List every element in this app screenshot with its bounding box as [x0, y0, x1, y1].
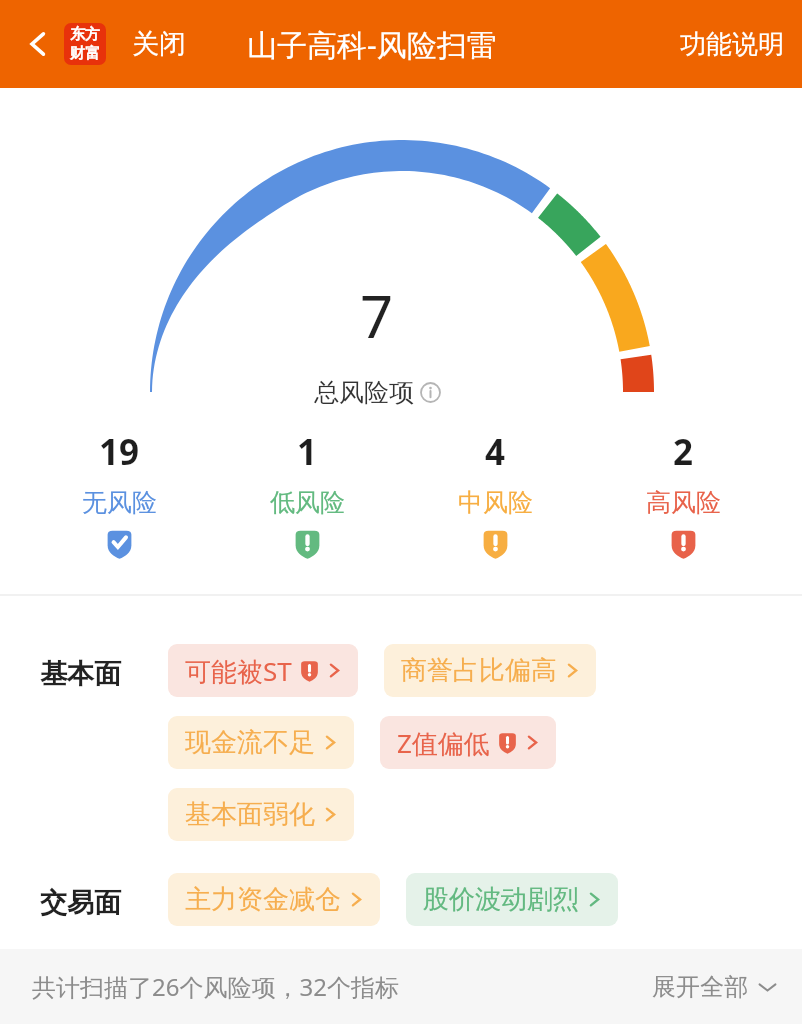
staticText: 功能说明 [680, 28, 784, 61]
staticText: 股价波动剧烈 [423, 883, 579, 916]
staticText: 可能被ST [185, 653, 292, 689]
staticText: 中风险 [458, 487, 533, 518]
staticText: 2 [673, 428, 694, 476]
staticText: 基本面弱化 [185, 798, 315, 831]
button[interactable]: 2 [608, 426, 758, 561]
button[interactable]: 展开全部 [644, 962, 786, 1012]
staticText: 低风险 [270, 487, 345, 518]
staticText: 共计扫描了26个风险项，32个指标 [32, 970, 399, 1003]
button[interactable]: Back [12, 18, 64, 70]
staticText: 4 [485, 428, 506, 476]
staticText: 东方 [70, 25, 100, 44]
staticText: 主力资金减仓 [185, 883, 341, 916]
button[interactable]: 可能被ST [168, 644, 358, 697]
button[interactable]: East Money home [64, 23, 106, 65]
button[interactable]: 4 [420, 426, 570, 561]
button[interactable]: 商誉占比偏高 [384, 644, 596, 697]
button[interactable]: 基本面弱化 [168, 788, 354, 841]
button[interactable]: Info about total risks [420, 382, 441, 403]
staticText: 高风险 [646, 487, 721, 518]
button[interactable]: 关闭 [122, 17, 196, 71]
button[interactable]: 功能说明 [672, 18, 792, 71]
staticText: 交易面 [40, 886, 121, 920]
staticText: 财富 [70, 44, 100, 63]
staticText: 总风险项 [314, 377, 414, 408]
button[interactable]: 股价波动剧烈 [406, 873, 618, 926]
staticText: Z值偏低 [397, 725, 490, 761]
staticText: 山子高科-风险扫雷 [247, 24, 497, 65]
staticText: 现金流不足 [185, 726, 315, 759]
staticText: 商誉占比偏高 [401, 654, 557, 687]
staticText: 1 [297, 428, 318, 476]
staticText: 7 [360, 276, 394, 355]
staticText: 无风险 [82, 487, 157, 518]
staticText: 基本面 [40, 657, 121, 691]
button[interactable]: 现金流不足 [168, 716, 354, 769]
staticText: 关闭 [132, 27, 186, 61]
staticText: 展开全部 [652, 972, 748, 1002]
button[interactable]: 主力资金减仓 [168, 873, 380, 926]
button[interactable]: 1 [232, 426, 382, 561]
staticText: 19 [99, 428, 140, 476]
button[interactable]: Z值偏低 [380, 716, 556, 769]
button[interactable]: 19 [44, 426, 194, 561]
